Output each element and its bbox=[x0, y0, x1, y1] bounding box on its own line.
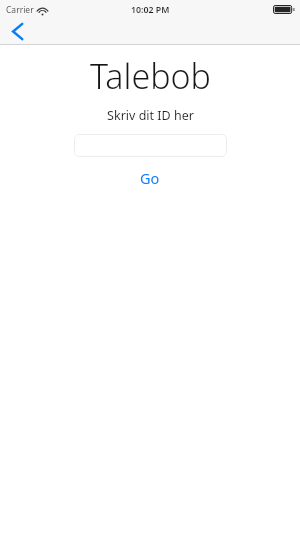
staticText: Go bbox=[140, 168, 160, 188]
button[interactable]: Go bbox=[126, 165, 174, 191]
button[interactable]: ID input field bbox=[74, 134, 227, 157]
staticText: Skriv dit ID her bbox=[107, 107, 194, 124]
staticText: Carrier bbox=[6, 4, 34, 16]
staticText: 10:02 PM bbox=[131, 4, 170, 16]
staticText: Talebob bbox=[90, 53, 211, 99]
button[interactable]: Back bbox=[0, 19, 34, 44]
